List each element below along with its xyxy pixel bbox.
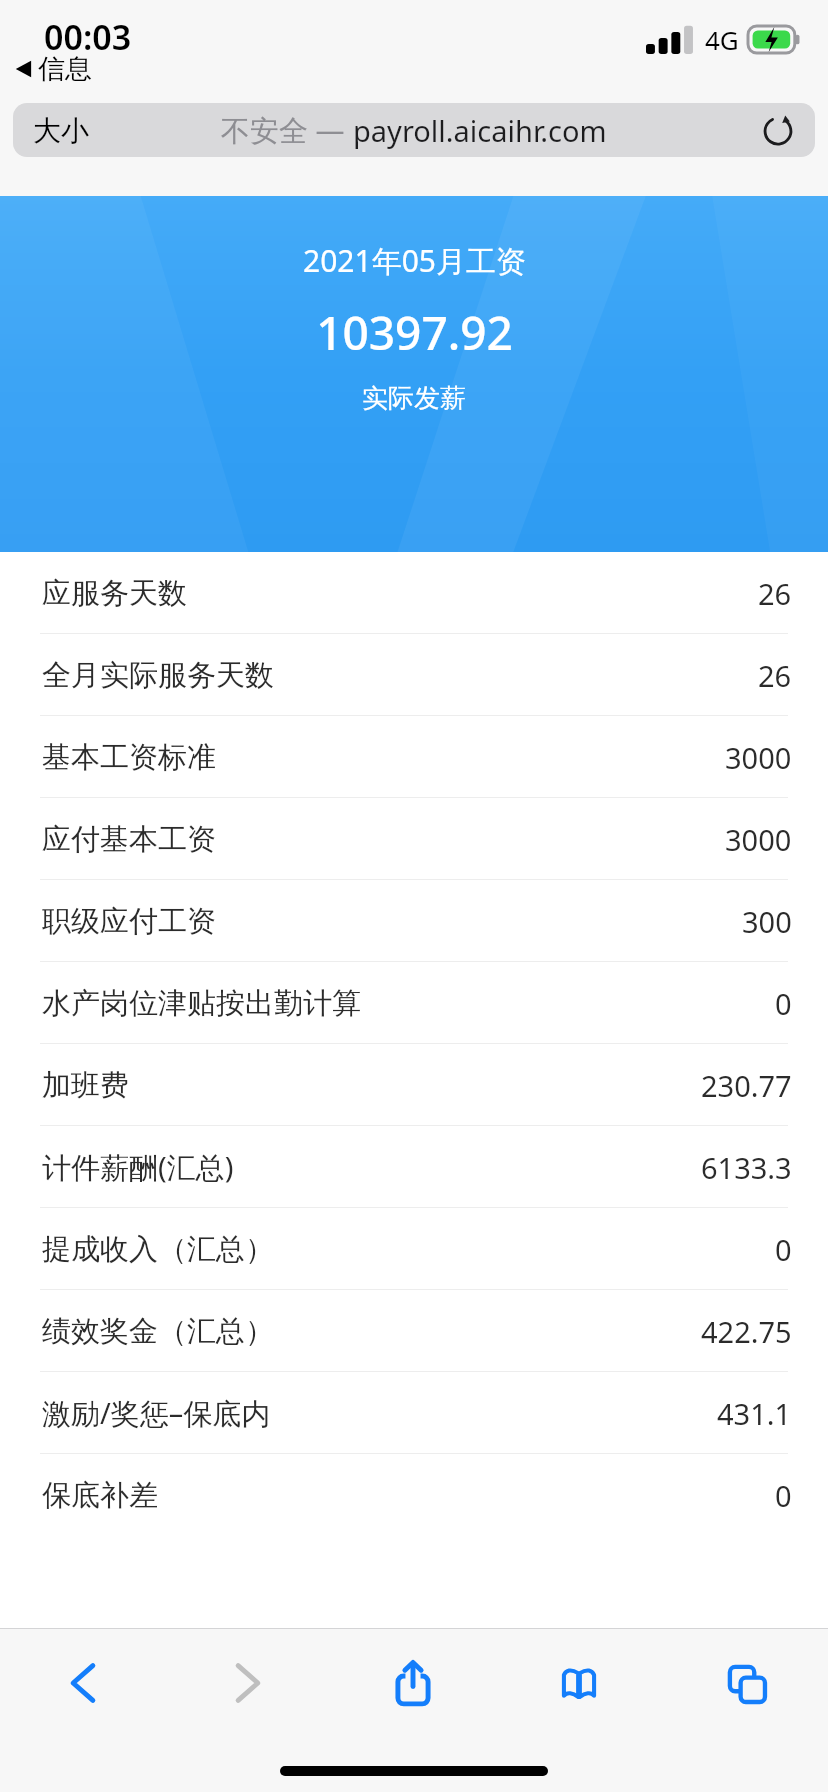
button[interactable]: 信息	[14, 52, 92, 86]
button[interactable]: 计件薪酬(汇总)	[0, 1126, 828, 1208]
staticText: 0	[775, 1476, 792, 1515]
staticText: 431.1	[717, 1394, 792, 1433]
staticText: 6133.3	[701, 1148, 792, 1187]
button[interactable]: 激励/奖惩–保底内	[0, 1372, 828, 1454]
staticText: 加班费	[42, 1067, 129, 1104]
button[interactable]: Bookmarks	[496, 1628, 662, 1738]
staticText: 职级应付工资	[42, 903, 216, 940]
staticText: 26	[758, 656, 792, 695]
staticText: 0	[775, 984, 792, 1023]
staticText: 全月实际服务天数	[42, 657, 274, 694]
button[interactable]: Back	[0, 1628, 165, 1738]
staticText: 300	[742, 902, 792, 941]
staticText: 3000	[725, 738, 792, 777]
button[interactable]: 基本工资标准	[0, 716, 828, 798]
staticText: 绩效奖金（汇总）	[42, 1313, 274, 1350]
staticText: 提成收入（汇总）	[42, 1231, 274, 1268]
button[interactable]: 绩效奖金（汇总）	[0, 1290, 828, 1372]
staticText: 大小	[33, 113, 89, 148]
staticText: 4G	[705, 22, 739, 57]
staticText: payroll.aicaihr.com	[353, 111, 607, 150]
staticText: 10397.92	[316, 301, 513, 364]
staticText: 00:03	[44, 14, 132, 60]
button[interactable]: Reload	[759, 111, 797, 149]
staticText: 激励/奖惩–保底内	[42, 1393, 271, 1433]
button[interactable]: 全月实际服务天数	[0, 634, 828, 716]
button[interactable]: 水产岗位津贴按出勤计算	[0, 962, 828, 1044]
staticText: 基本工资标准	[42, 739, 216, 776]
button[interactable]: Forward	[165, 1628, 330, 1738]
staticText: 2021年05月工资	[303, 240, 526, 281]
staticText: 3000	[725, 820, 792, 859]
button[interactable]: 职级应付工资	[0, 880, 828, 962]
button[interactable]: 应付基本工资	[0, 798, 828, 880]
staticText: 应服务天数	[42, 575, 187, 612]
staticText: 0	[775, 1230, 792, 1269]
button[interactable]: 保底补差	[0, 1454, 828, 1536]
button[interactable]: 提成收入（汇总）	[0, 1208, 828, 1290]
button[interactable]: Tabs	[662, 1628, 828, 1738]
staticText: 不安全 —	[221, 110, 353, 150]
staticText: 422.75	[701, 1312, 792, 1351]
button[interactable]: Share	[330, 1628, 496, 1738]
staticText: 水产岗位津贴按出勤计算	[42, 985, 361, 1022]
staticText: 26	[758, 574, 792, 613]
button[interactable]: 加班费	[0, 1044, 828, 1126]
button[interactable]: 大小	[13, 103, 815, 157]
button[interactable]: 应服务天数	[0, 552, 828, 634]
staticText: 230.77	[701, 1066, 792, 1105]
staticText: 信息	[38, 52, 92, 86]
staticText: 实际发薪	[362, 382, 466, 415]
staticText: 保底补差	[42, 1477, 158, 1514]
staticText: 计件薪酬(汇总)	[42, 1147, 234, 1187]
staticText: 应付基本工资	[42, 821, 216, 858]
